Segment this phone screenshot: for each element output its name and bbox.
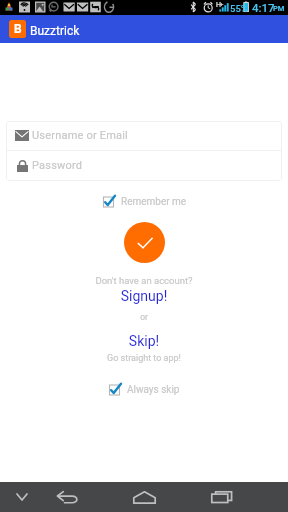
button[interactable]: Sign in bbox=[124, 222, 165, 263]
staticText: Always skip bbox=[127, 384, 180, 396]
staticText: Buzztrick bbox=[30, 24, 80, 38]
staticText: or bbox=[0, 312, 288, 322]
button[interactable]: Remember me bbox=[102, 196, 187, 208]
staticText: Don't have an account? bbox=[0, 275, 288, 286]
button[interactable]: Username or Email bbox=[6, 121, 282, 150]
staticText: Go straight to app! bbox=[0, 353, 288, 364]
button[interactable]: Skip! bbox=[0, 333, 288, 349]
button[interactable]: Password bbox=[6, 151, 282, 180]
staticText: 55% bbox=[230, 3, 248, 14]
button[interactable]: Recent apps bbox=[203, 482, 239, 512]
staticText: Remember me bbox=[121, 196, 187, 208]
staticText: H bbox=[216, 1, 221, 9]
staticText: + bbox=[220, 0, 224, 7]
staticText: B bbox=[14, 22, 22, 36]
staticText: Password bbox=[32, 159, 83, 172]
button[interactable]: Back bbox=[49, 482, 85, 512]
button[interactable]: Always skip bbox=[108, 384, 180, 396]
button[interactable]: Hide keyboard bbox=[4, 482, 40, 512]
button[interactable]: Signup! bbox=[0, 288, 288, 304]
button[interactable]: Home bbox=[126, 482, 162, 512]
staticText: PM bbox=[273, 4, 285, 13]
staticText: 4:17 bbox=[252, 1, 275, 14]
staticText: Username or Email bbox=[32, 129, 128, 142]
